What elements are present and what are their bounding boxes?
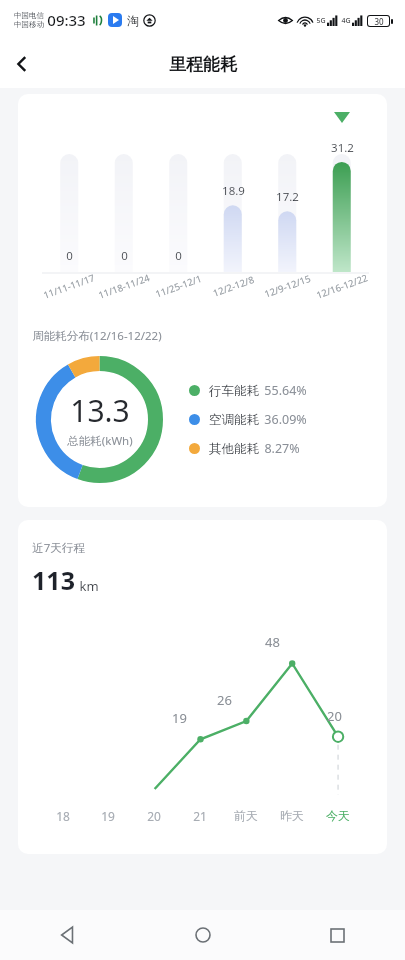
staticText: 总能耗(kWh): [67, 433, 133, 449]
staticText: 中国电信: [14, 11, 44, 20]
staticText: 今天: [326, 808, 350, 823]
staticText: 19: [101, 808, 115, 824]
staticText: 18: [56, 808, 70, 824]
staticText: 09:33: [47, 10, 86, 30]
button[interactable]: Home: [135, 910, 270, 960]
staticText: 0: [175, 248, 182, 264]
staticText: 13.3: [70, 390, 130, 431]
staticText: 26: [217, 691, 232, 709]
staticText: km: [79, 577, 99, 595]
staticText: 113: [32, 563, 75, 597]
staticText: 中国移动: [14, 20, 44, 29]
staticText: 12/16-12/22: [314, 271, 370, 302]
button[interactable]: Back: [0, 42, 44, 86]
staticText: 20: [147, 808, 161, 824]
staticText: 其他能耗: [209, 441, 259, 457]
button[interactable]: Back: [0, 910, 135, 960]
staticText: 5G: [316, 16, 326, 26]
staticText: 55.64%: [264, 382, 307, 399]
staticText: 8.27%: [264, 440, 300, 457]
staticText: 昨天: [280, 808, 304, 823]
button[interactable]: Recents: [270, 910, 405, 960]
staticText: 4G: [341, 16, 351, 26]
staticText: 淘: [127, 13, 139, 28]
staticText: 12/2-12/8: [211, 273, 256, 300]
staticText: 36.09%: [264, 411, 307, 428]
staticText: 11/25-12/1: [153, 272, 204, 301]
staticText: 18.9: [222, 183, 245, 199]
staticText: 30: [374, 16, 384, 26]
staticText: 11/18-11/24: [96, 271, 152, 302]
staticText: 空调能耗: [209, 412, 259, 428]
staticText: 周能耗分布(12/16-12/22): [32, 328, 162, 344]
staticText: 0: [66, 248, 73, 264]
staticText: 11/11-11/17: [41, 271, 97, 302]
staticText: 48: [265, 633, 280, 651]
staticText: 近7天行程: [32, 540, 85, 556]
staticText: 里程能耗: [169, 54, 237, 75]
staticText: 12/9-12/15: [262, 272, 313, 301]
staticText: 17.2: [276, 189, 299, 205]
staticText: 0: [121, 248, 128, 264]
staticText: 20: [327, 707, 342, 725]
staticText: 19: [172, 709, 187, 727]
staticText: 前天: [234, 808, 258, 823]
staticText: 21: [193, 808, 207, 824]
staticText: 31.2: [331, 140, 354, 156]
staticText: 行车能耗: [209, 383, 259, 399]
